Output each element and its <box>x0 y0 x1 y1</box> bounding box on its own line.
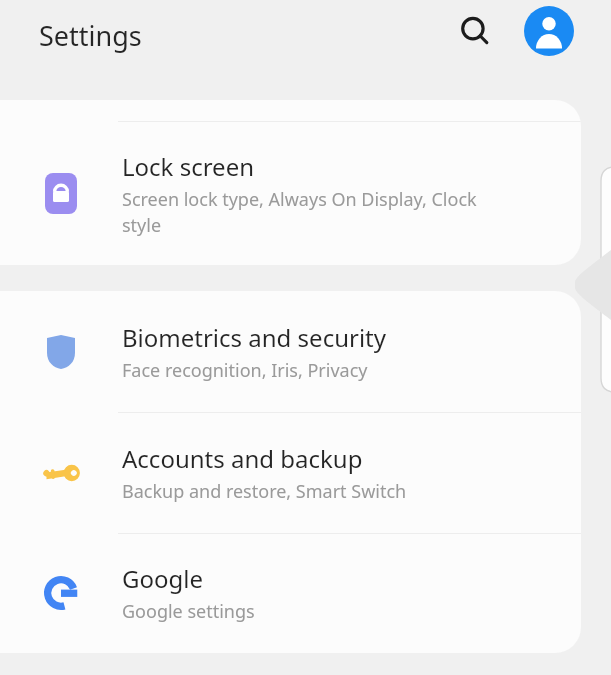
staticText: Settings <box>39 17 142 54</box>
button[interactable]: Search <box>452 8 498 54</box>
button[interactable]: Account <box>524 6 574 56</box>
staticText: Backup and restore, Smart Switch <box>122 479 407 504</box>
staticText: Google <box>122 562 203 595</box>
button[interactable]: Google <box>0 533 581 653</box>
button[interactable]: Lock screen <box>0 122 581 265</box>
staticText: Face recognition, Iris, Privacy <box>122 358 368 383</box>
staticText: Biometrics and security <box>122 321 386 354</box>
staticText: Accounts and backup <box>122 442 363 475</box>
button[interactable]: Accounts and backup <box>0 412 581 533</box>
button[interactable]: Biometrics and security <box>0 291 581 412</box>
staticText: Screen lock type, Always On Display, Clo… <box>122 187 477 238</box>
staticText: Google settings <box>122 599 255 624</box>
staticText: Lock screen <box>122 150 255 183</box>
